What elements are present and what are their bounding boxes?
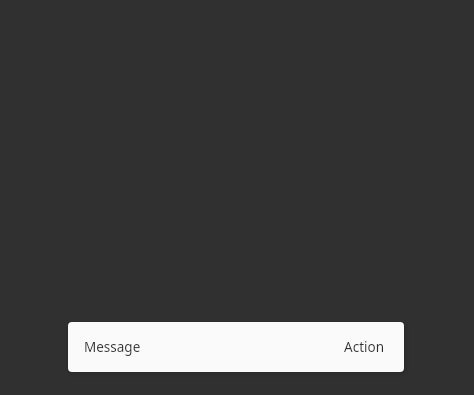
staticText: Action xyxy=(344,338,384,356)
button[interactable]: Action xyxy=(344,338,384,356)
button[interactable]: Message xyxy=(68,322,404,372)
staticText: Message xyxy=(84,338,141,356)
